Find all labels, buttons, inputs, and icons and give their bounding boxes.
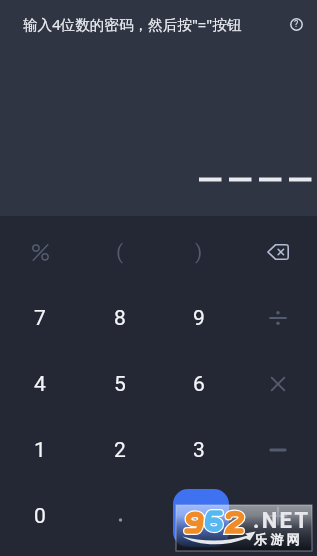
staticText: 7	[34, 306, 46, 331]
other: Backspace	[267, 244, 289, 260]
button[interactable]: 5	[80, 351, 159, 417]
button[interactable]: 8	[80, 285, 159, 351]
button[interactable]: Plus	[238, 483, 317, 549]
button[interactable]: 3	[159, 417, 238, 483]
staticText: 3	[193, 438, 205, 463]
staticText: 5	[114, 372, 126, 397]
other: Minus	[268, 440, 288, 460]
button[interactable]: )	[159, 219, 238, 285]
button[interactable]: 6	[159, 351, 238, 417]
staticText: =	[195, 505, 208, 531]
staticText: 输入4位数的密码，然后按"="按钮	[23, 14, 242, 34]
button[interactable]: Percent	[0, 219, 80, 285]
staticText: 8	[114, 306, 126, 331]
staticText: (	[116, 240, 124, 265]
staticText: 2	[114, 438, 126, 463]
button[interactable]: Equals	[173, 489, 229, 547]
other: Divide	[268, 308, 288, 328]
staticText: 1	[34, 438, 46, 463]
button[interactable]: 0	[0, 483, 80, 549]
staticText: .NET	[253, 508, 311, 534]
other: Multiply	[268, 374, 288, 394]
staticText: 0	[34, 504, 46, 529]
button[interactable]: Equals	[159, 483, 238, 549]
button[interactable]: Multiply	[238, 351, 317, 417]
button[interactable]: Divide	[238, 285, 317, 351]
staticText: 6	[193, 372, 205, 397]
button[interactable]: 4	[0, 351, 80, 417]
staticText: 4	[34, 372, 46, 397]
button[interactable]: 7	[0, 285, 80, 351]
staticText: )	[195, 240, 203, 265]
button[interactable]: 9	[159, 285, 238, 351]
staticText: ?	[294, 19, 299, 30]
button[interactable]	[80, 483, 159, 549]
button[interactable]: Minus	[238, 417, 317, 483]
staticText: 乐游网	[254, 531, 303, 547]
button[interactable]: Backspace	[238, 219, 317, 285]
button[interactable]: 1	[0, 417, 80, 483]
button[interactable]: (	[80, 219, 159, 285]
other: Plus	[268, 506, 288, 526]
button[interactable]: 2	[80, 417, 159, 483]
staticText: 9	[193, 306, 205, 331]
other: Percent	[32, 244, 49, 261]
button[interactable]: Help	[284, 12, 308, 36]
